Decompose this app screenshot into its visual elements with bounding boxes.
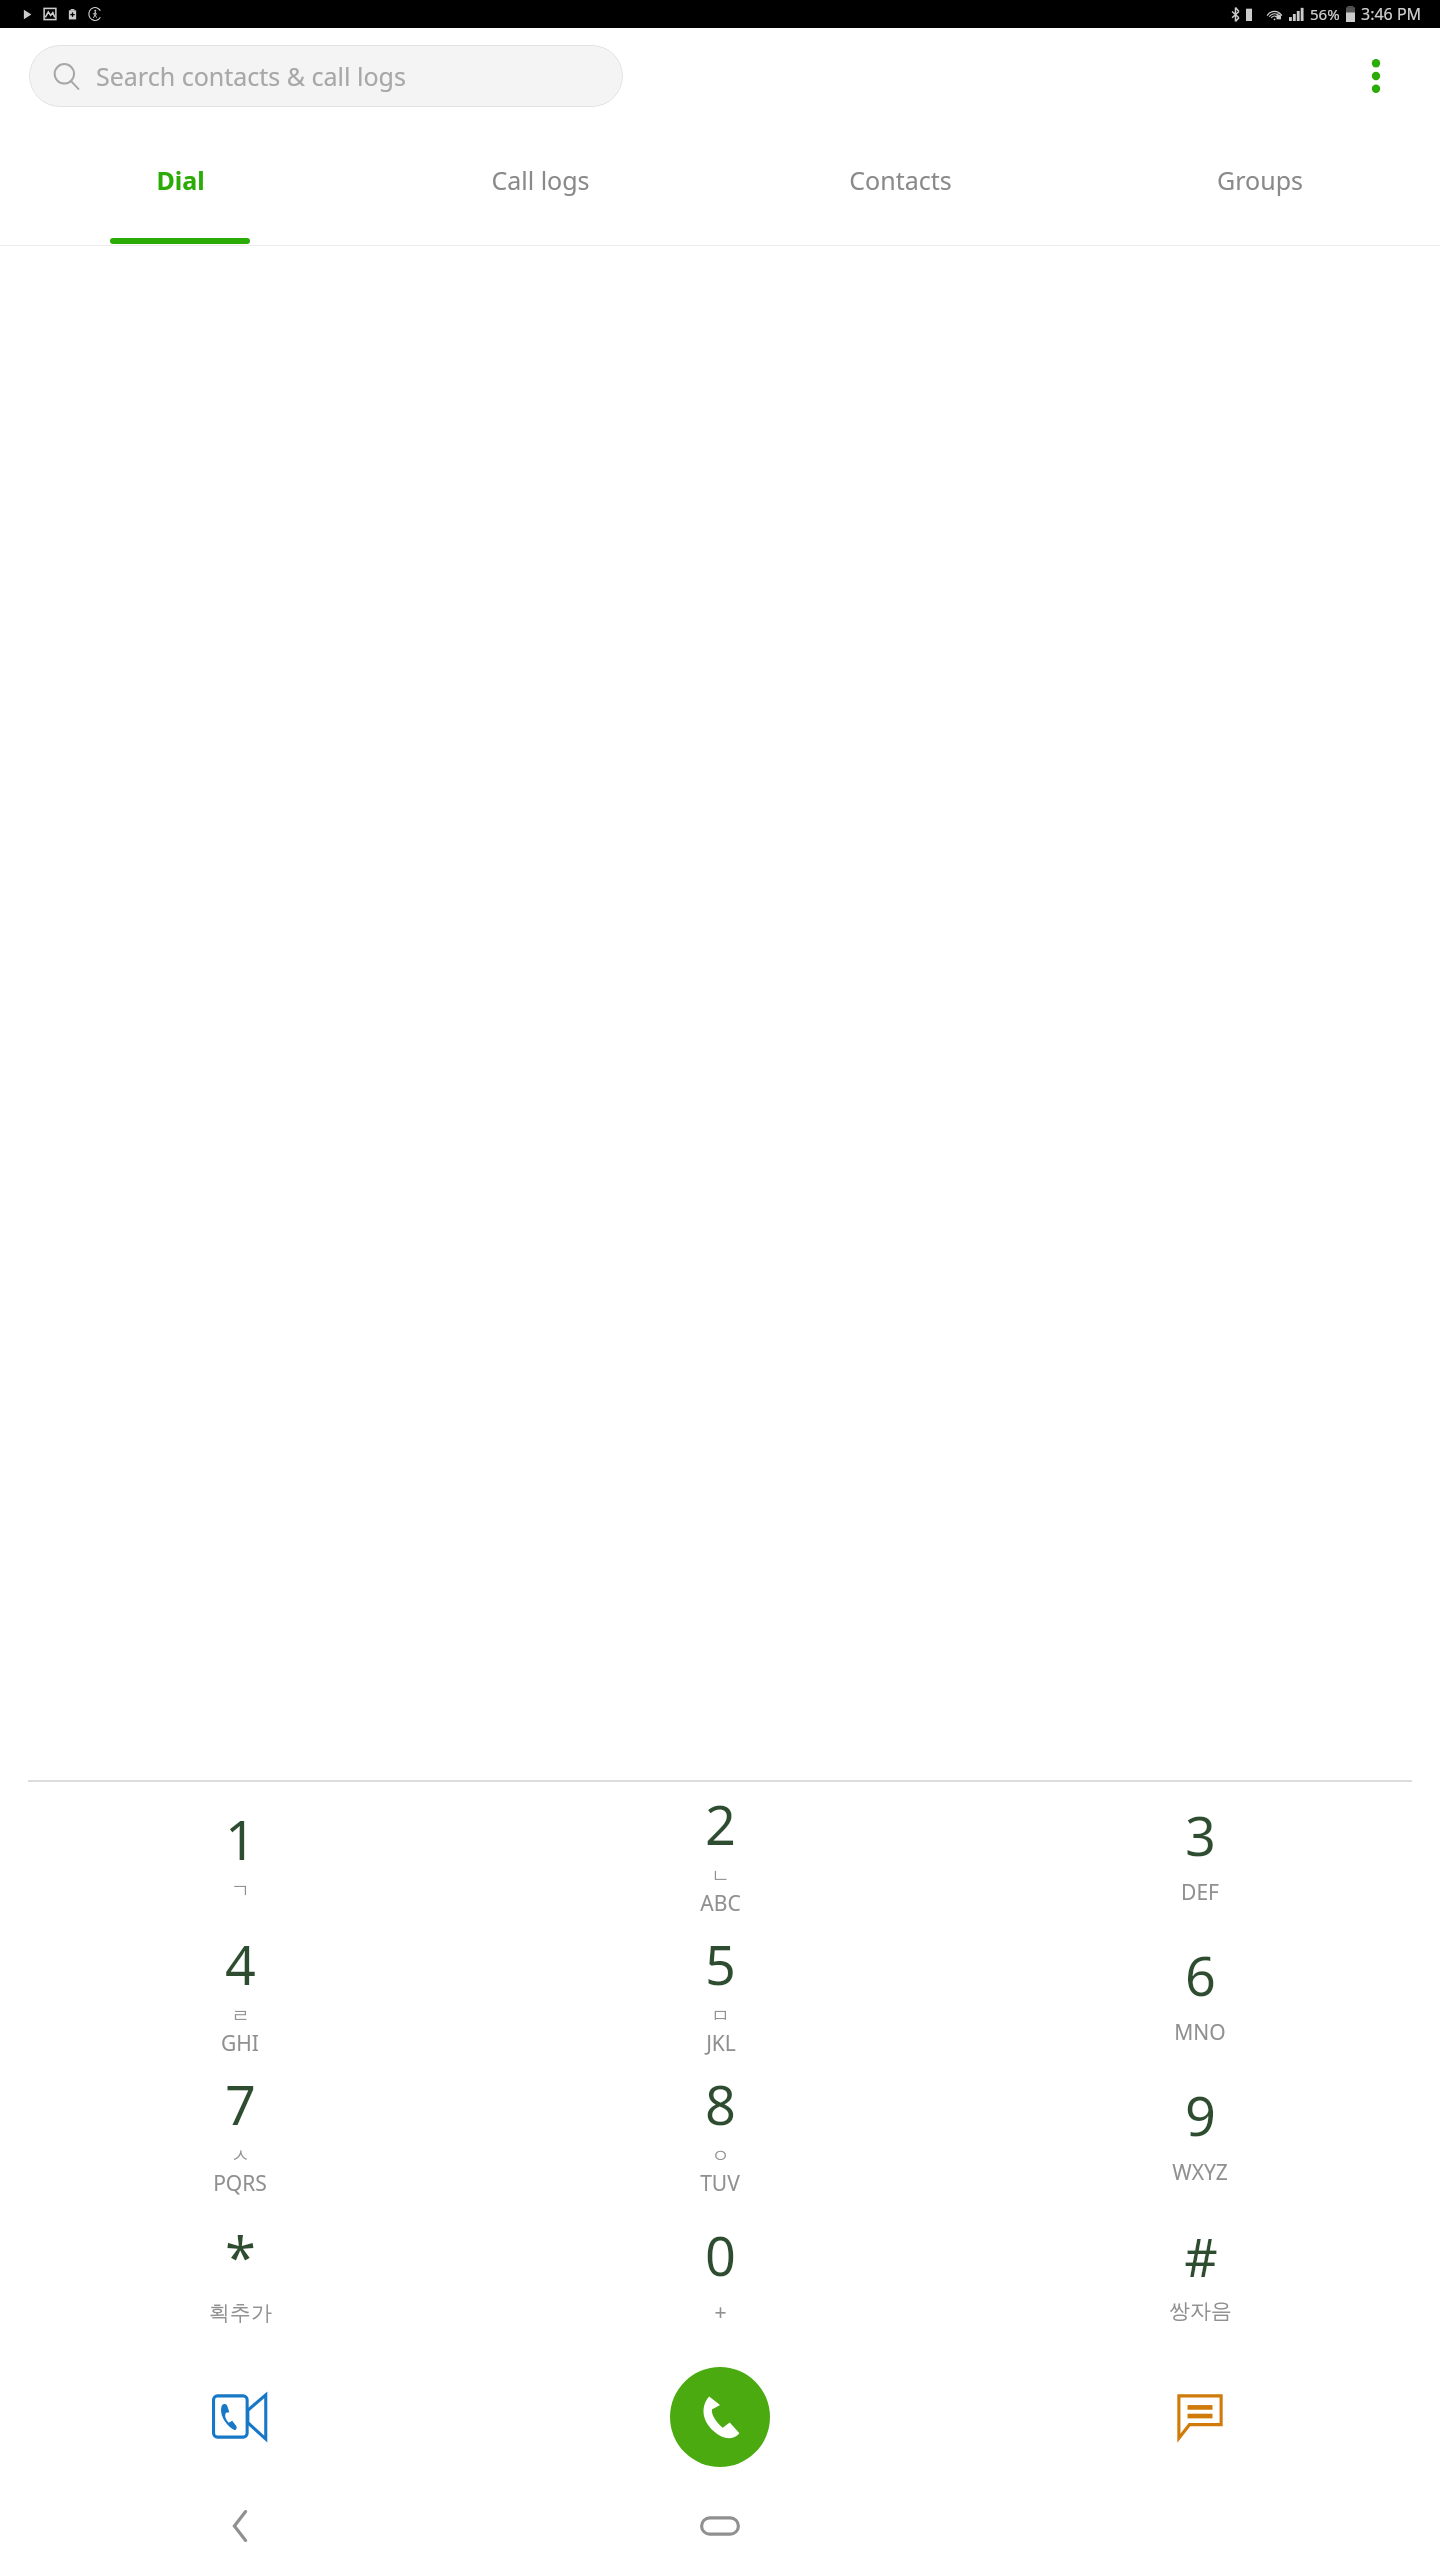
staticText: Search contacts & call logs bbox=[96, 59, 406, 93]
staticText: 3 bbox=[1185, 1798, 1216, 1872]
staticText: ㅇ bbox=[711, 2144, 730, 2168]
staticText: ㄱ bbox=[231, 1879, 250, 1903]
button[interactable]: 9 bbox=[960, 2062, 1440, 2202]
button[interactable]: Call bbox=[670, 2367, 770, 2467]
button[interactable]: Search contacts & call logs bbox=[29, 45, 623, 107]
button[interactable]: Contacts bbox=[720, 123, 1080, 246]
button[interactable]: Video call bbox=[0, 2342, 480, 2492]
staticText: 0 bbox=[705, 2218, 736, 2292]
staticText: * bbox=[225, 2218, 256, 2294]
staticText: 2 bbox=[705, 1787, 736, 1861]
button[interactable]: 8 bbox=[480, 2062, 960, 2202]
staticText: 1 bbox=[225, 1802, 256, 1876]
staticText: 4 bbox=[225, 1927, 256, 2001]
staticText: ㄴ bbox=[711, 1864, 730, 1888]
staticText: Contacts bbox=[849, 163, 952, 197]
button[interactable]: # bbox=[960, 2202, 1440, 2342]
staticText: ABC bbox=[700, 1889, 741, 1918]
staticText: ㅁ bbox=[711, 2004, 730, 2028]
staticText: Dial bbox=[156, 163, 205, 197]
button[interactable]: 4 bbox=[0, 1922, 480, 2062]
button[interactable]: More options bbox=[1340, 40, 1412, 112]
button[interactable]: 2 bbox=[480, 1782, 960, 1922]
button[interactable]: Groups bbox=[1080, 123, 1440, 246]
staticText: 6 bbox=[1185, 1938, 1216, 2012]
staticText: MNO bbox=[1174, 2018, 1226, 2047]
staticText: 56% bbox=[1310, 4, 1340, 24]
staticText: WXYZ bbox=[1172, 2158, 1228, 2187]
staticText: JKL bbox=[706, 2029, 736, 2058]
button[interactable]: Home bbox=[480, 2492, 960, 2560]
staticText: PQRS bbox=[213, 2169, 267, 2198]
staticText: 3:46 PM bbox=[1361, 3, 1422, 25]
button[interactable]: 7 bbox=[0, 2062, 480, 2202]
staticText: 획추가 bbox=[209, 2300, 272, 2326]
button[interactable]: 3 bbox=[960, 1782, 1440, 1922]
button[interactable]: Dial bbox=[0, 123, 360, 246]
button[interactable]: Call logs bbox=[360, 123, 720, 246]
staticText: 8 bbox=[705, 2067, 736, 2141]
staticText: Call logs bbox=[491, 163, 590, 197]
button[interactable]: 5 bbox=[480, 1922, 960, 2062]
staticText: 5 bbox=[705, 1927, 736, 2001]
staticText: + bbox=[714, 2298, 727, 2327]
staticText: 7 bbox=[225, 2067, 256, 2141]
button[interactable]: Back bbox=[0, 2492, 480, 2560]
staticText: GHI bbox=[221, 2029, 259, 2058]
button[interactable]: 1 bbox=[0, 1782, 480, 1922]
button[interactable]: 6 bbox=[960, 1922, 1440, 2062]
staticText: 9 bbox=[1185, 2078, 1216, 2152]
button[interactable]: Message bbox=[960, 2342, 1440, 2492]
staticText: TUV bbox=[700, 2169, 740, 2198]
staticText: 쌍자음 bbox=[1169, 2298, 1232, 2324]
staticText: ㄹ bbox=[231, 2004, 250, 2028]
staticText: # bbox=[1184, 2221, 1218, 2292]
staticText: ㅅ bbox=[231, 2144, 250, 2168]
button[interactable]: * bbox=[0, 2202, 480, 2342]
button[interactable]: 0 bbox=[480, 2202, 960, 2342]
staticText: Groups bbox=[1217, 163, 1303, 197]
staticText: DEF bbox=[1181, 1878, 1219, 1907]
